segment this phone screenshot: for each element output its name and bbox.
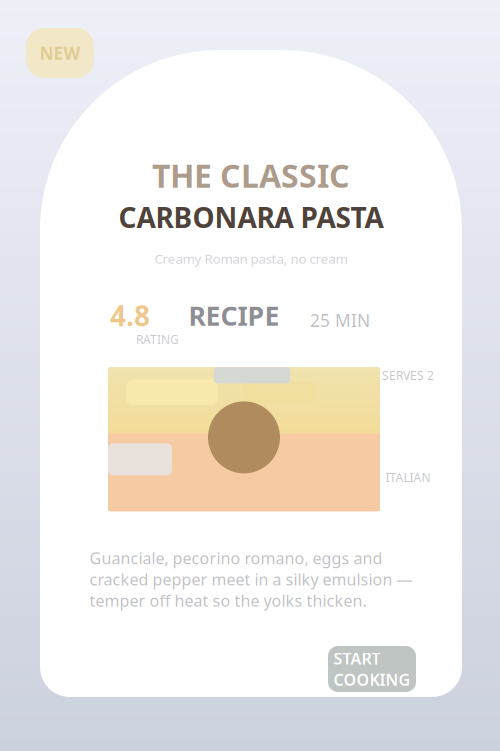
staticText: Guanciale, pecorino romano, eggs and cra…: [89, 547, 412, 611]
button[interactable]: START COOKING: [328, 646, 416, 692]
staticText: NEW: [39, 41, 80, 64]
staticText: START COOKING: [333, 648, 410, 690]
staticText: CARBONARA PASTA: [118, 198, 383, 236]
staticText: Creamy Roman pasta, no cream: [154, 250, 347, 267]
staticText: RECIPE: [188, 298, 279, 333]
staticText: ITALIAN: [385, 469, 430, 485]
staticText: RATING: [136, 331, 179, 347]
button[interactable]: NEW: [26, 28, 94, 78]
staticText: SERVES 2: [382, 367, 434, 383]
staticText: 4.8: [110, 297, 150, 334]
staticText: 25 MIN: [310, 309, 370, 332]
staticText: THE CLASSIC: [152, 154, 350, 196]
